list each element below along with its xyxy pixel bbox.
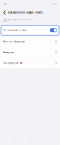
button[interactable]: Deep sleeping apps bbox=[0, 58, 60, 68]
staticText: Background usage limits bbox=[8, 11, 42, 14]
staticText: Sleeping apps bbox=[3, 51, 14, 53]
button[interactable]: Never auto sleeping apps bbox=[0, 36, 60, 47]
staticText: Deep sleeping apps bbox=[3, 62, 19, 64]
button[interactable]: Sleeping apps bbox=[0, 47, 60, 58]
button[interactable]: Recent apps bbox=[13, 137, 15, 139]
staticText: LTE ⦁⦁ bbox=[52, 3, 57, 5]
staticText: Limit battery usage for apps you don't u… bbox=[3, 19, 33, 22]
button[interactable]: Put unused apps to sleep bbox=[0, 24, 60, 36]
staticText: 11:24 bbox=[3, 3, 7, 5]
button[interactable]: Back bbox=[44, 137, 46, 139]
button[interactable]: Back bbox=[3, 10, 7, 15]
staticText: Never auto sleeping apps bbox=[3, 41, 25, 43]
staticText: Put unused apps to sleep bbox=[3, 29, 26, 31]
